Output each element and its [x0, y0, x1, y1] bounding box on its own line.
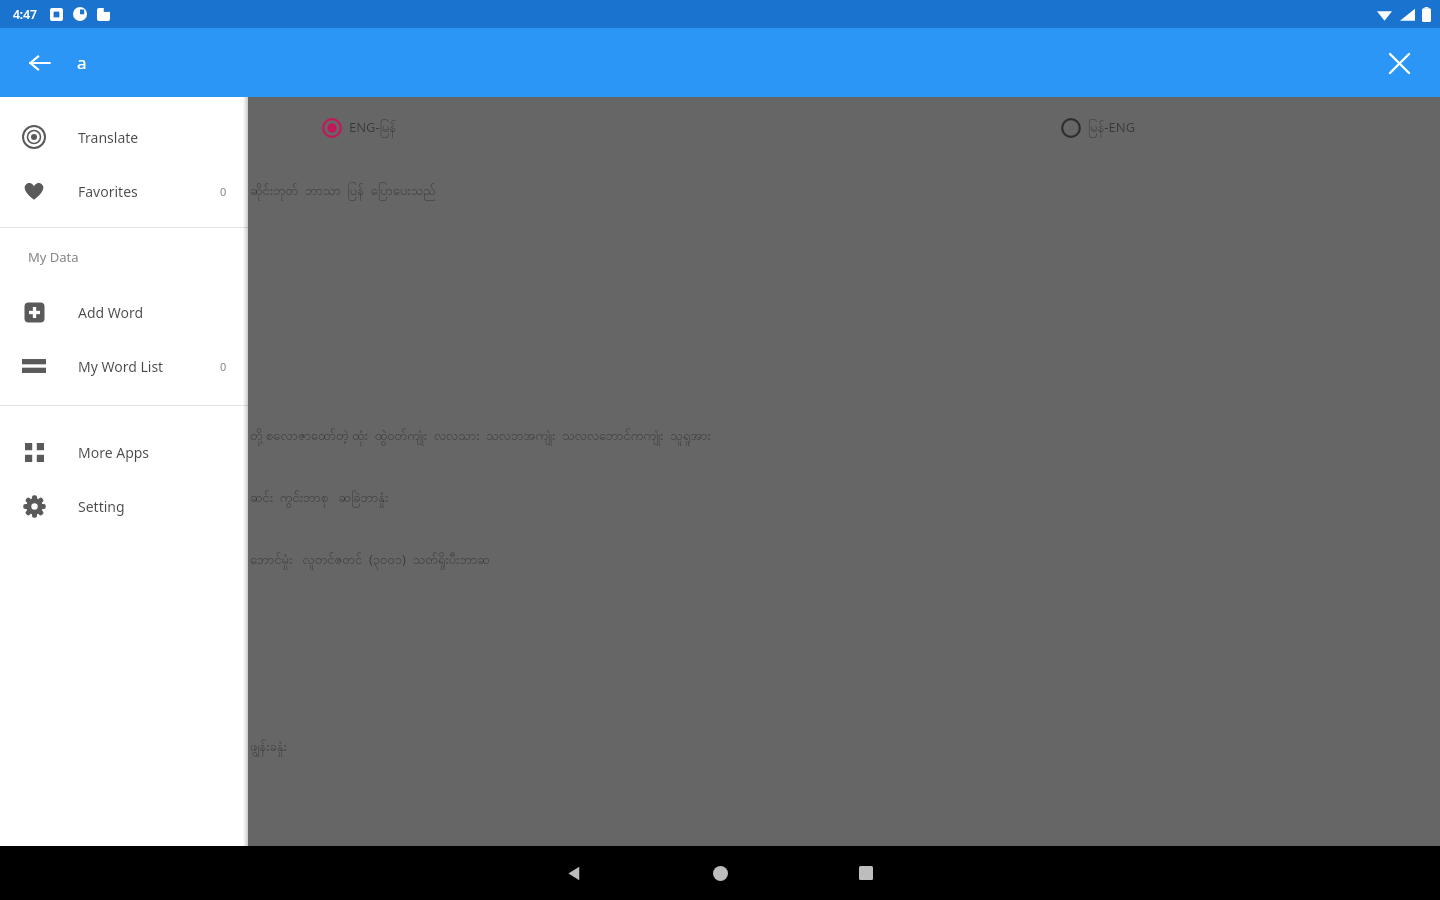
staticText: တို့ စလောဇာထော်တဲ့ ထုံး ထွဲဝတ်ကျုံး လလသာ… — [250, 426, 711, 446]
staticText: More Apps — [78, 443, 150, 462]
button[interactable]: Translate — [0, 110, 248, 164]
button[interactable]: My Word List — [0, 339, 248, 393]
button[interactable]: More Apps — [0, 425, 248, 479]
button[interactable]: Clear search — [1375, 39, 1423, 87]
button[interactable]: Setting — [0, 479, 248, 533]
staticText: Setting — [78, 497, 125, 516]
staticText: Add Word — [78, 303, 144, 322]
staticText: a — [77, 51, 87, 74]
button[interactable]: Add Word — [0, 285, 248, 339]
button[interactable]: Home — [685, 846, 755, 900]
staticText: Translate — [78, 128, 139, 147]
staticText: Favorites — [78, 182, 138, 201]
staticText: 4:47 — [13, 6, 37, 22]
button[interactable]: ENG-မြန် — [318, 114, 401, 142]
staticText: ဆင်း ကွင်းဘာစု ဆခြဲဘာနှုံး — [250, 488, 389, 508]
button[interactable]: Back — [16, 39, 64, 87]
button[interactable]: မြန်-ENG — [1057, 114, 1140, 142]
button[interactable]: Back — [539, 846, 609, 900]
staticText: My Word List — [78, 357, 164, 376]
button[interactable]: Favorites — [0, 164, 248, 218]
staticText: 0 — [220, 184, 227, 199]
staticText: 0 — [220, 359, 227, 374]
button[interactable]: Recent apps — [831, 846, 901, 900]
staticText: မြန်-ENG — [1088, 118, 1136, 138]
staticText: ဖျွန်းခနှုံး — [250, 738, 287, 757]
staticText: ENG-မြန် — [349, 118, 397, 138]
staticText: ဆိုင်းဘုတ် ဘာသာ ပြန် ပြောပေးသည် — [250, 181, 436, 201]
staticText: ဘောင်မှုံး လူတင်ဇတင် (၃၀၀၁) သတ်ရှိုးပီးဘ… — [250, 550, 490, 570]
staticText: My Data — [28, 248, 79, 266]
